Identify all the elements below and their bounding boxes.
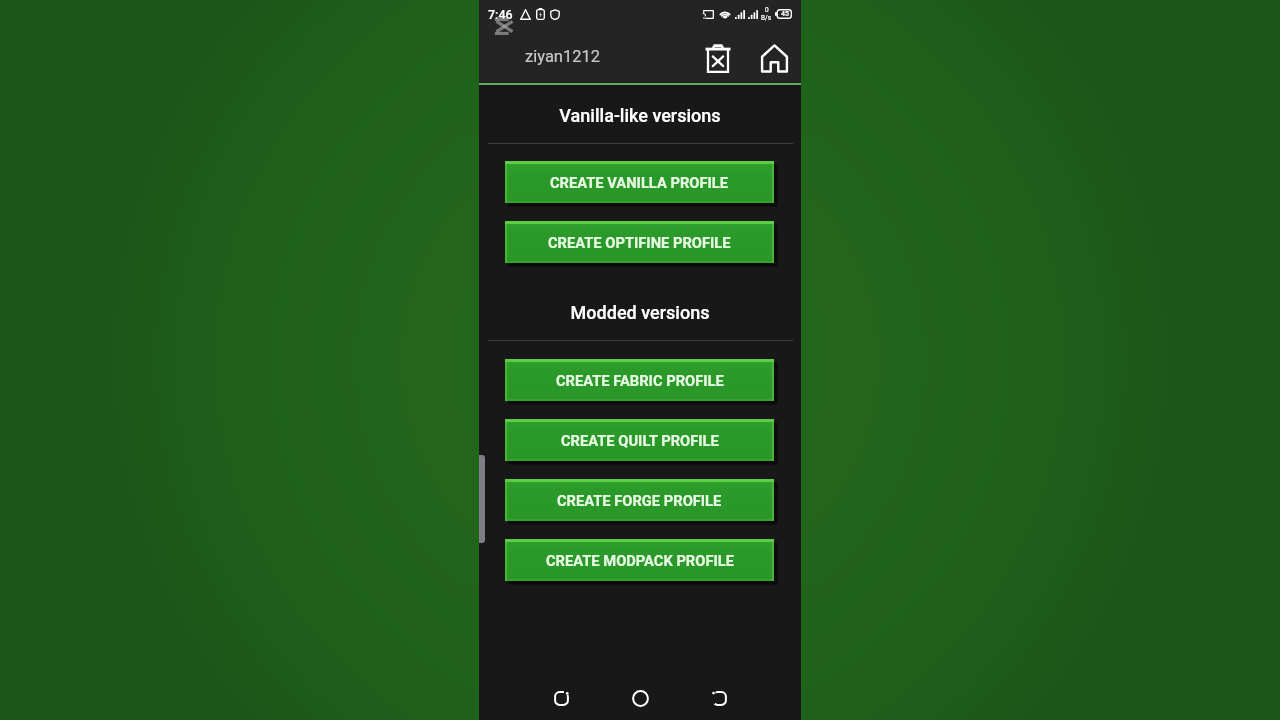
button[interactable]: Back xyxy=(699,678,739,718)
button[interactable]: Home xyxy=(755,39,793,77)
staticText: Vanilla-like versions xyxy=(479,105,801,126)
staticText: B/s xyxy=(761,14,772,22)
staticText: CREATE QUILT PROFILE xyxy=(561,432,719,449)
staticText: 45 xyxy=(781,10,789,18)
button[interactable]: CREATE QUILT PROFILE xyxy=(505,419,774,461)
button[interactable]: CREATE FORGE PROFILE xyxy=(505,479,774,521)
button[interactable]: CREATE VANILLA PROFILE xyxy=(505,161,774,203)
staticText: CREATE FABRIC PROFILE xyxy=(556,372,724,389)
button[interactable]: CREATE FABRIC PROFILE xyxy=(505,359,774,401)
button[interactable]: CREATE OPTIFINE PROFILE xyxy=(505,221,774,263)
button[interactable]: Delete profile xyxy=(699,39,737,77)
staticText: Modded versions xyxy=(479,302,801,323)
button[interactable]: Home xyxy=(620,678,660,718)
staticText: CREATE OPTIFINE PROFILE xyxy=(548,234,731,251)
staticText: CREATE MODPACK PROFILE xyxy=(546,552,734,569)
staticText: 0 xyxy=(765,6,769,14)
staticText: 7:46 xyxy=(488,7,513,22)
button[interactable]: CREATE MODPACK PROFILE xyxy=(505,539,774,581)
staticText: CREATE FORGE PROFILE xyxy=(557,492,722,509)
staticText: CREATE VANILLA PROFILE xyxy=(550,174,729,191)
staticText: ziyan1212 xyxy=(525,47,601,66)
button[interactable]: Recent apps xyxy=(541,678,581,718)
